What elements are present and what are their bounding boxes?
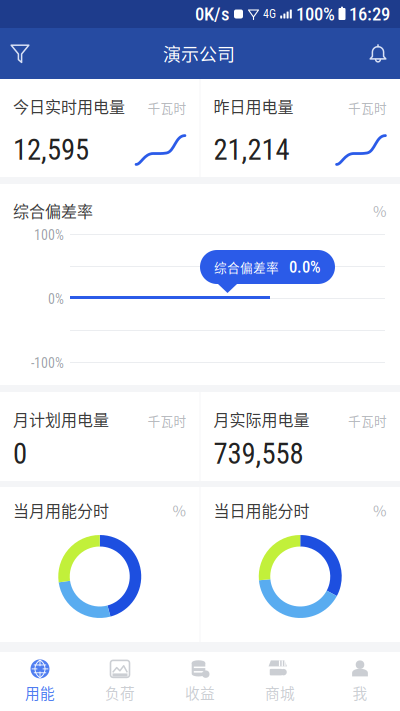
staticText: 0.0% (289, 257, 321, 277)
staticText: 16:29 (349, 3, 390, 25)
button[interactable]: 收益 (160, 651, 240, 711)
staticText: 收益 (185, 682, 215, 703)
staticText: 当日用能分时 (213, 498, 309, 522)
button[interactable]: Notifications (356, 28, 400, 79)
staticText: 0K/s (195, 3, 229, 25)
staticText: % (373, 200, 387, 221)
staticText: 千瓦时 (147, 411, 186, 430)
staticText: 千瓦时 (348, 411, 387, 430)
staticText: 千瓦时 (147, 98, 186, 117)
button[interactable]: Filter (0, 28, 42, 79)
staticText: 演示公司 (163, 40, 235, 67)
staticText: 我 (352, 682, 367, 703)
staticText: 千瓦时 (348, 98, 387, 117)
staticText: 月实际用电量 (213, 407, 309, 431)
staticText: % (172, 499, 186, 521)
button[interactable]: 用能 (0, 651, 80, 711)
button[interactable]: 我 (320, 651, 400, 711)
staticText: 21,214 (213, 133, 289, 167)
staticText: % (373, 499, 387, 521)
button[interactable]: 商城 (240, 651, 320, 711)
staticText: 综合偏差率 (214, 258, 279, 276)
staticText: 综合偏差率 (13, 199, 93, 222)
staticText: 0% (48, 291, 64, 307)
staticText: 负荷 (105, 682, 135, 703)
staticText: 当月用能分时 (13, 498, 109, 522)
staticText: 100% (34, 227, 64, 243)
staticText: 739,558 (213, 437, 303, 471)
staticText: 月计划用电量 (13, 407, 109, 431)
staticText: -100% (31, 355, 64, 371)
staticText: 4G (263, 7, 276, 21)
staticText: 今日实时用电量 (13, 94, 125, 118)
staticText: 用能 (25, 682, 55, 703)
staticText: 100% (296, 3, 335, 25)
staticText: 昨日用电量 (213, 94, 293, 118)
staticText: 12,595 (13, 133, 89, 167)
staticText: 商城 (265, 682, 295, 703)
staticText: 0 (13, 437, 27, 471)
button[interactable]: 负荷 (80, 651, 160, 711)
